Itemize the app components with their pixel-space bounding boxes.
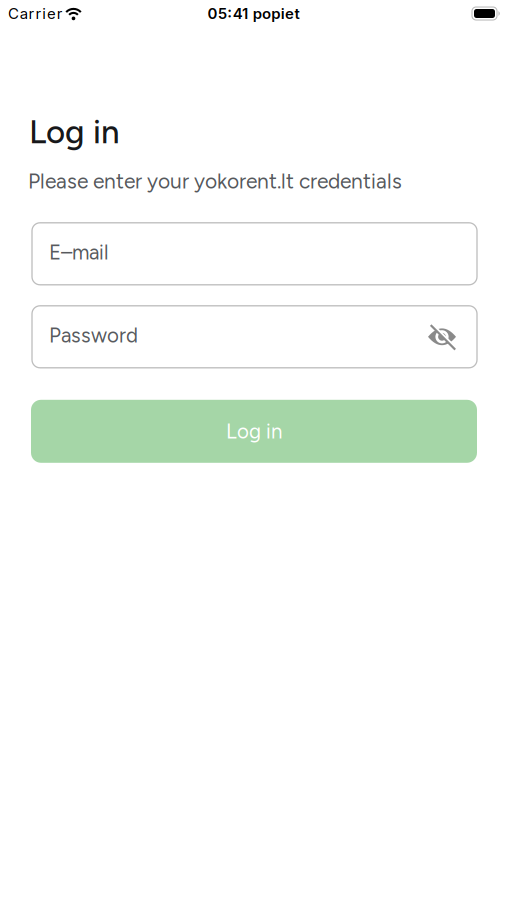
staticText: Log in [29,112,120,152]
button[interactable]: Log in [31,400,477,463]
button[interactable]: Password [32,306,477,368]
staticText: Carrier [8,4,63,22]
button[interactable]: E–mail [32,223,477,285]
staticText: E–mail [49,240,109,265]
button[interactable]: Show password [428,324,477,350]
staticText: Please enter your yokorent.lt credential… [28,169,402,194]
staticText: Password [49,323,138,348]
staticText: 05:41 popiet [208,4,299,22]
staticText: Log in [226,419,282,444]
